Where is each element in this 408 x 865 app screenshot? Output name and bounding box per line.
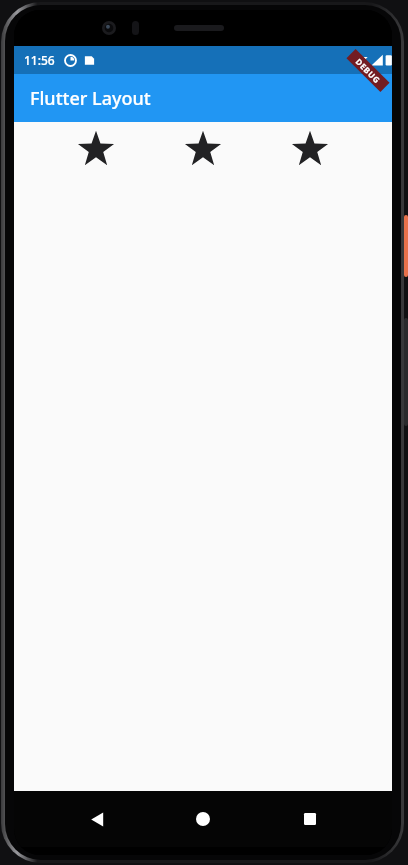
button[interactable]: Star 3 bbox=[285, 124, 335, 174]
staticText: Flutter Layout bbox=[30, 86, 151, 111]
staticText: DEBUG bbox=[353, 56, 383, 86]
staticText: 11:56 bbox=[24, 52, 55, 68]
button[interactable]: Star 2 bbox=[178, 124, 228, 174]
button[interactable]: Home bbox=[179, 795, 227, 843]
button[interactable]: Back bbox=[73, 795, 121, 843]
button[interactable]: Star 1 bbox=[71, 124, 121, 174]
button[interactable]: Recent apps bbox=[286, 795, 334, 843]
